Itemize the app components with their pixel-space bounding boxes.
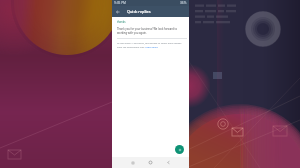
staticText: 36% (180, 1, 187, 5)
staticText: 9:35 PM (114, 1, 126, 5)
button[interactable]: Home (145, 157, 156, 168)
staticText: thanks (117, 20, 126, 24)
button[interactable]: Add quick reply (175, 145, 184, 154)
button[interactable]: Back (112, 6, 123, 17)
staticText: Quick replies (127, 9, 151, 14)
button[interactable]: Recents (127, 157, 138, 168)
button[interactable]: Back (163, 157, 174, 168)
staticText: To use super '/' shortcuts, find phrase … (117, 42, 187, 48)
button[interactable]: thanks (117, 17, 187, 48)
staticText: Thank you for your business! We look for… (117, 27, 187, 35)
